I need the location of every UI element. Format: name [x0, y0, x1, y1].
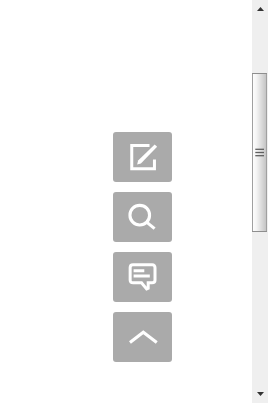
button[interactable]: Scrollbar thumb: [252, 73, 267, 232]
button[interactable]: Scroll down: [252, 385, 268, 403]
button[interactable]: Collapse: [113, 312, 172, 362]
button[interactable]: Compose: [113, 132, 172, 182]
button[interactable]: Messages: [113, 252, 172, 302]
button[interactable]: Search: [113, 192, 172, 242]
button[interactable]: Scroll up: [252, 0, 268, 18]
